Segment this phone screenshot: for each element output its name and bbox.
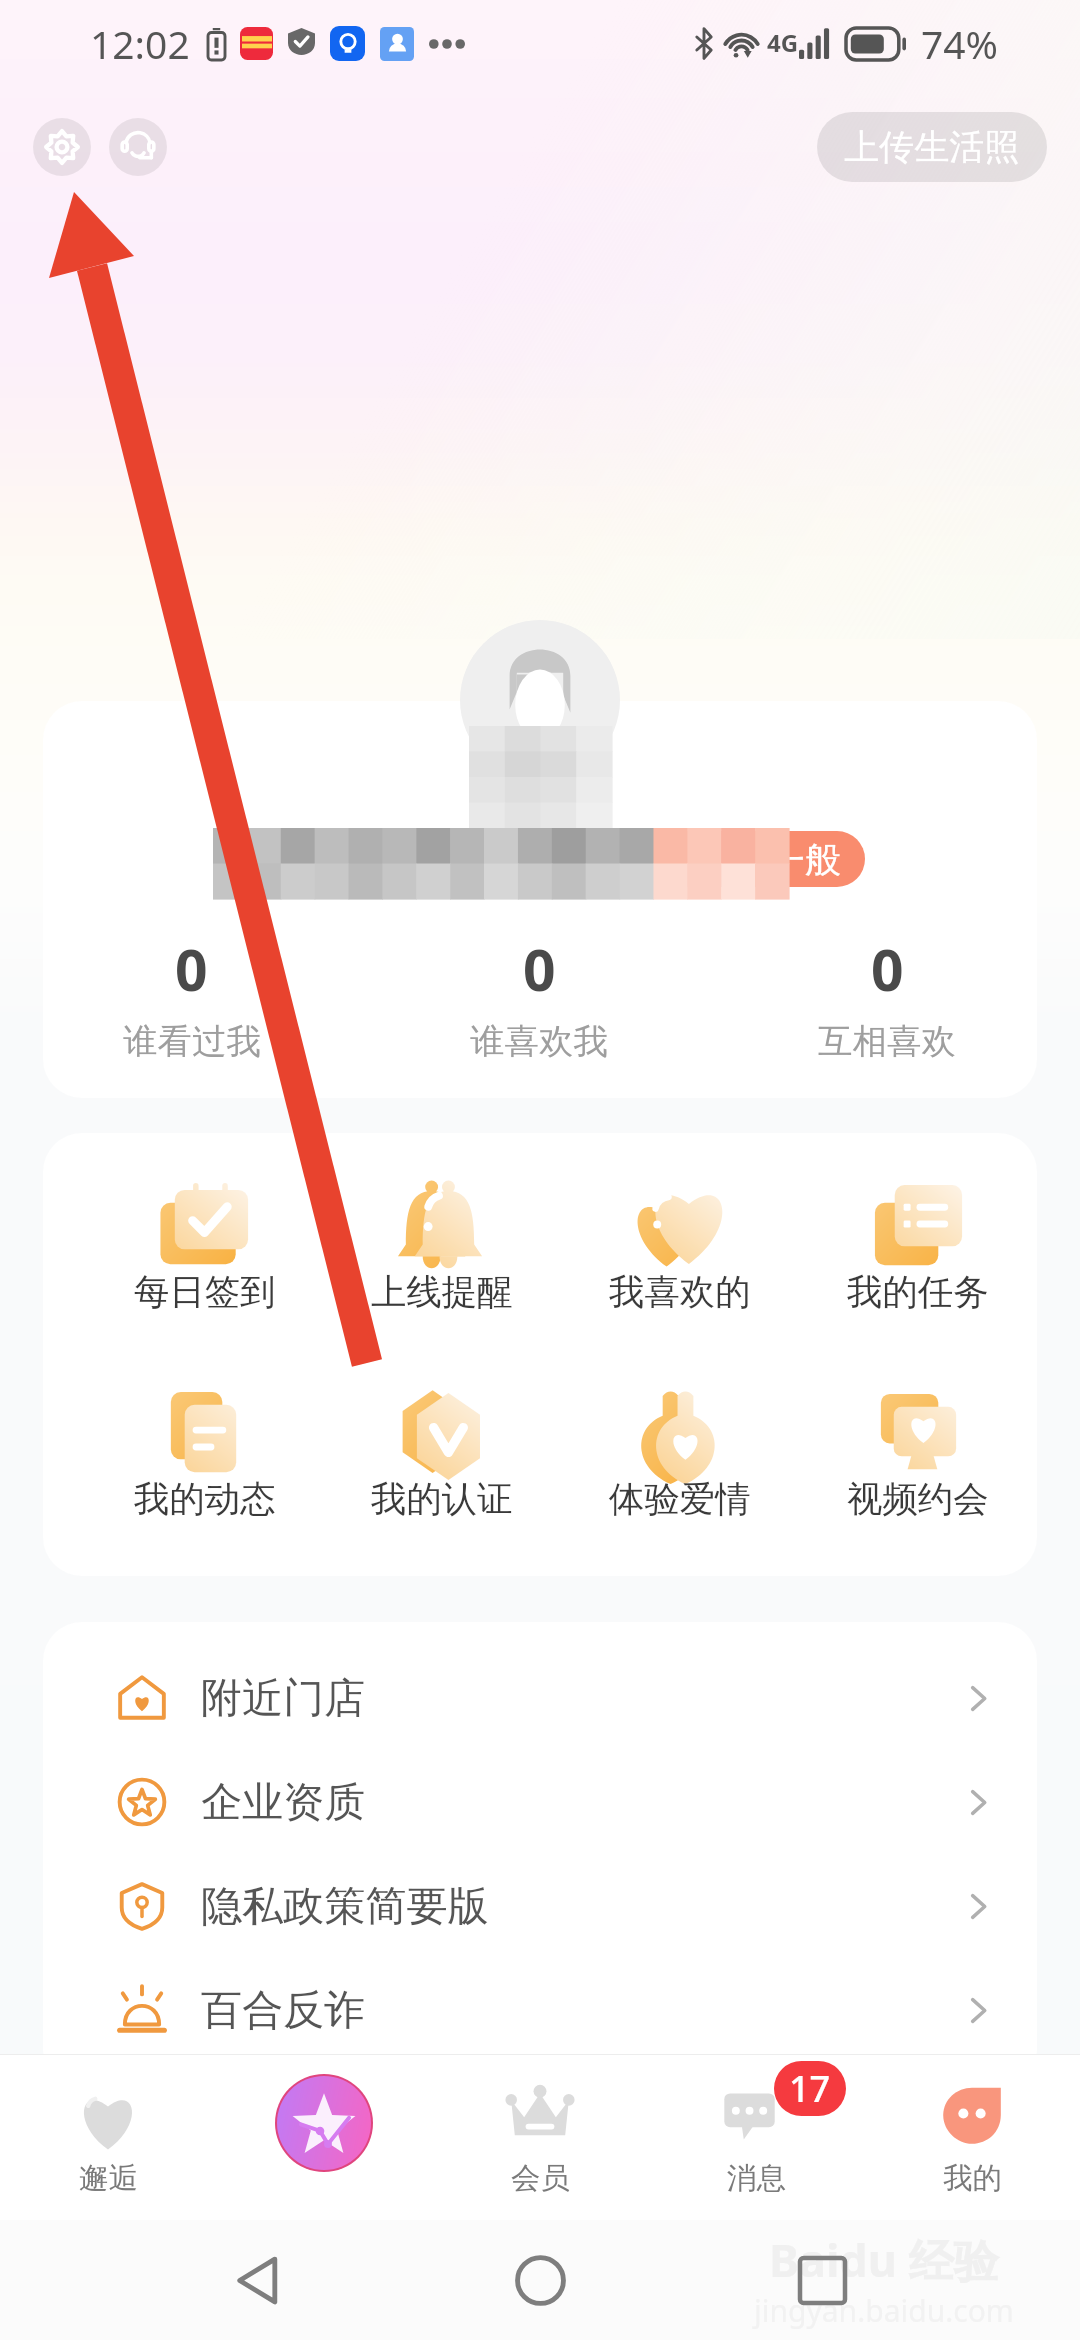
staticText: 谁看过我	[123, 1020, 261, 1063]
staticText: 上传生活照	[844, 125, 1020, 169]
staticText: 0	[175, 930, 208, 1008]
staticText: 上线提醒	[371, 1270, 513, 1315]
staticText: 企业资质	[201, 1776, 366, 1828]
button[interactable]: Recents	[771, 2229, 873, 2331]
button[interactable]: 邂逅	[0, 2079, 216, 2197]
button[interactable]: 我的	[864, 2079, 1080, 2197]
button[interactable]: 体验爱情	[561, 1390, 799, 1534]
staticText: 消息	[727, 2160, 786, 2197]
staticText: 会员	[511, 2160, 570, 2197]
button[interactable]: 我的任务	[799, 1183, 1037, 1327]
staticText: jingyan.baidu.com	[754, 2290, 1014, 2331]
staticText: 隐私政策简要版	[201, 1880, 489, 1932]
staticText: 附近门店	[201, 1672, 366, 1724]
staticText: Baidu 经验	[769, 2229, 999, 2290]
staticText: 我喜欢的	[609, 1270, 751, 1315]
button[interactable]: 0	[43, 930, 365, 1063]
button[interactable]: Back	[207, 2229, 309, 2331]
staticText: 74%	[921, 17, 999, 70]
button[interactable]: 企业资质	[43, 1750, 1037, 1854]
staticText: 一般	[769, 837, 841, 882]
button[interactable]: 我喜欢的	[561, 1183, 799, 1327]
button[interactable]: 视频约会	[799, 1390, 1037, 1534]
staticText: 互相喜欢	[818, 1020, 956, 1063]
button[interactable]: 我的动态	[86, 1390, 323, 1534]
staticText: 0	[523, 930, 556, 1008]
staticText: 0	[871, 930, 904, 1008]
staticText: 视频约会	[847, 1477, 989, 1522]
button[interactable]: 我的认证	[323, 1390, 561, 1534]
staticText: 我的动态	[134, 1477, 276, 1522]
button[interactable]: Home	[489, 2229, 591, 2331]
button[interactable]: Settings	[33, 118, 91, 176]
button[interactable]: 上传生活照	[817, 112, 1047, 182]
staticText: 谁喜欢我	[470, 1020, 608, 1063]
button[interactable]: 附近门店	[43, 1646, 1037, 1750]
staticText: 17	[789, 2064, 831, 2113]
button[interactable]: 隐私政策简要版	[43, 1854, 1037, 1958]
staticText: 12:02	[90, 17, 190, 70]
staticText: 4G	[767, 26, 799, 59]
button[interactable]: 上线提醒	[323, 1183, 561, 1327]
button[interactable]: 17	[648, 2079, 864, 2197]
staticText: 邂逅	[79, 2160, 138, 2197]
staticText: 我的任务	[847, 1270, 989, 1315]
staticText: 每日签到	[134, 1270, 276, 1315]
button[interactable]: Discover	[216, 2089, 432, 2187]
staticText: 我的认证	[371, 1477, 513, 1522]
staticText: 我的	[943, 2160, 1002, 2197]
button[interactable]: 0	[713, 930, 1037, 1063]
button[interactable]: 0	[365, 930, 713, 1063]
staticText: 百合反诈	[201, 1984, 366, 2036]
button[interactable]: 会员	[432, 2079, 648, 2197]
button[interactable]: Customer service	[109, 118, 167, 176]
button[interactable]: 百合反诈	[43, 1958, 1037, 2062]
button[interactable]: 每日签到	[86, 1183, 323, 1327]
staticText: 体验爱情	[609, 1477, 751, 1522]
